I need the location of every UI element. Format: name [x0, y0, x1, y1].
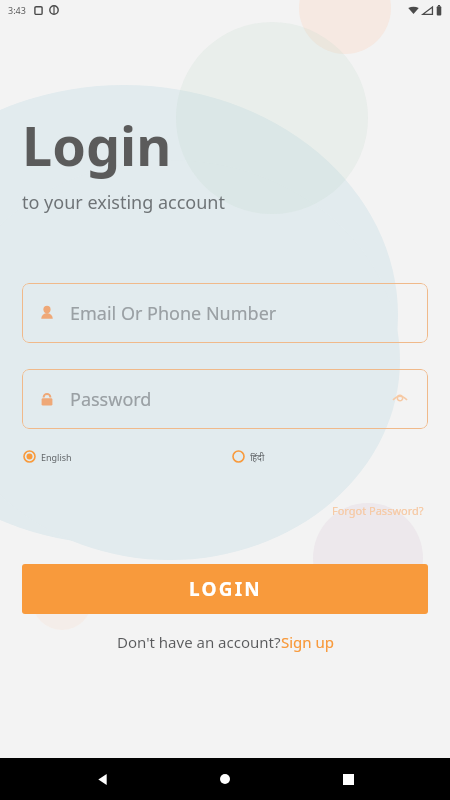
staticText: Password: [70, 387, 388, 412]
button[interactable]: Show password: [388, 387, 412, 411]
staticText: Don't have an account?: [117, 632, 281, 652]
staticText: Forgot Password?: [332, 503, 424, 518]
button[interactable]: English: [22, 447, 73, 466]
button[interactable]: Back: [81, 758, 123, 800]
staticText: LOGIN: [189, 576, 262, 602]
button[interactable]: LOGIN: [22, 564, 428, 614]
staticText: हिंदी: [250, 451, 265, 463]
button[interactable]: Recent apps: [327, 758, 369, 800]
staticText: Email Or Phone Number: [70, 301, 412, 326]
button[interactable]: हिंदी: [231, 447, 266, 466]
staticText: to your existing account: [22, 190, 225, 215]
staticText: English: [41, 451, 72, 463]
button[interactable]: Email Or Phone Number: [22, 283, 428, 343]
button[interactable]: Home: [204, 758, 246, 800]
button[interactable]: Sign up: [281, 632, 334, 652]
staticText: 3:43: [8, 4, 26, 16]
staticText: Sign up: [281, 632, 334, 652]
button[interactable]: Password: [22, 369, 428, 429]
staticText: Login: [22, 108, 172, 182]
button[interactable]: Forgot Password?: [328, 499, 428, 522]
